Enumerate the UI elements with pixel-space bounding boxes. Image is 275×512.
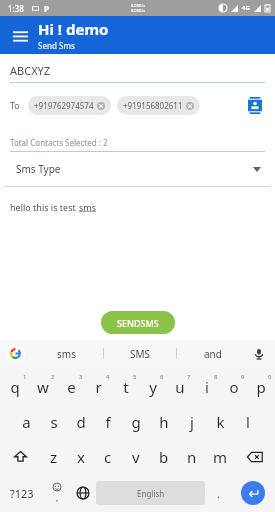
button[interactable]: Google search [6,344,25,363]
button[interactable]: y [139,369,166,404]
staticText: m [213,447,228,467]
staticText: 1:38 [8,3,24,14]
button[interactable]: . [205,474,231,512]
staticText: d [76,412,86,432]
staticText: 4G [242,4,250,12]
button[interactable]: n [178,439,206,474]
staticText: +919156802611 [123,100,183,111]
staticText: Total Contacts Selected : 2 [10,137,108,148]
button[interactable]: hello this is test [10,201,265,213]
button[interactable]: Shift [0,439,40,474]
staticText: sms [79,201,97,213]
staticText: P [44,3,49,14]
button[interactable]: c [94,439,122,474]
button[interactable]: ABCXYZ [10,63,265,83]
button[interactable]: SENDSMS [101,311,175,334]
staticText: h [159,412,169,432]
staticText: u [175,377,185,397]
button[interactable]: s [40,404,67,439]
staticText: e [67,377,76,397]
staticText: i [205,377,209,397]
button[interactable]: p [247,369,274,404]
button[interactable]: e [57,369,85,404]
staticText: k [216,412,225,432]
button[interactable]: h [150,404,178,439]
staticText: Hi ! demo [38,19,109,39]
staticText: , [56,491,59,503]
button[interactable]: v [122,439,150,474]
staticText: ABCXYZ [10,63,51,78]
button[interactable]: and [177,340,249,367]
staticText: g [131,412,141,432]
button[interactable]: English [96,481,205,505]
staticText: hello this is test [10,201,79,213]
button[interactable]: Enter [231,474,275,512]
staticText: w [37,377,49,397]
staticText: SMS [130,347,151,361]
button[interactable]: Sms Type [10,162,265,176]
button[interactable]: Change language [70,474,96,512]
button[interactable]: w [29,369,57,404]
staticText: sms [57,347,76,361]
staticText: x [77,447,85,467]
button[interactable]: j [178,404,206,439]
button[interactable]: g [122,404,150,439]
button[interactable]: f [94,404,122,439]
staticText: +919762974574 [34,100,94,111]
button[interactable]: sms [30,340,103,367]
button[interactable]: Pick contacts [245,95,265,115]
staticText: 8 [214,373,218,381]
button[interactable]: +919156802611 [117,96,200,115]
button[interactable]: Emoji [44,474,70,512]
staticText: 0 [268,373,272,381]
staticText: and [204,347,222,361]
staticText: v [132,447,140,467]
button[interactable]: z [40,439,67,474]
staticText: s [50,412,58,432]
button[interactable]: SMS [104,340,176,367]
staticText: 4 [106,373,110,381]
button[interactable]: q [1,369,29,404]
button[interactable]: d [67,404,94,439]
staticText: Sms Type [16,162,61,176]
button[interactable]: k [206,404,234,439]
button[interactable]: l [234,404,262,439]
button[interactable]: +919762974574 [28,96,111,115]
button[interactable]: ?123 [0,474,44,512]
button[interactable]: o [220,369,247,404]
staticText: y [149,377,157,397]
staticText: l [246,412,250,432]
button[interactable]: r [85,369,112,404]
staticText: SENDSMS [117,317,159,329]
button[interactable]: b [150,439,178,474]
staticText: 6 [160,373,164,381]
staticText: 3 [79,373,83,381]
staticText: 5 [133,373,137,381]
staticText: f [105,412,111,432]
button[interactable]: t [112,369,139,404]
staticText: To [10,99,20,111]
staticText: ?123 [10,486,34,501]
staticText: English [137,488,165,499]
staticText: 9 [241,373,245,381]
staticText: 1 [23,373,27,381]
staticText: q [10,377,20,397]
button[interactable]: Backspace [234,439,275,474]
staticText: p [256,377,266,397]
staticText: a [22,412,31,432]
staticText: o [229,377,239,397]
button[interactable]: Open navigation menu [6,21,34,49]
button[interactable]: u [166,369,193,404]
staticText: c [104,447,112,467]
button[interactable]: Voice input [251,346,267,362]
staticText: . [217,486,220,501]
staticText: 0.00K/s [131,8,145,13]
button[interactable]: a [13,404,40,439]
staticText: n [187,447,197,467]
button[interactable]: x [67,439,94,474]
button[interactable]: m [206,439,234,474]
staticText: 7 [187,373,191,381]
staticText: 2 [51,373,55,381]
staticText: 0.00K/s [131,3,145,8]
button[interactable]: i [193,369,220,404]
